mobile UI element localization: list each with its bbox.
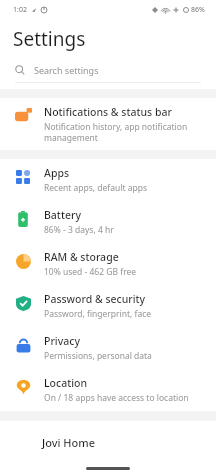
staticText: 86% [191, 5, 205, 15]
staticText: 86% - 3 days, 4 hr [44, 224, 114, 236]
button[interactable]: Battery [0, 201, 216, 243]
staticText: Location [44, 376, 88, 390]
staticText: Battery [44, 208, 81, 222]
staticText: RAM & storage [44, 250, 119, 264]
other: Location [16, 380, 31, 395]
button[interactable]: Privacy [0, 327, 216, 369]
button[interactable]: RAM and storage [0, 243, 216, 285]
staticText: 1:02 [13, 5, 27, 15]
staticText: Settings [13, 26, 86, 52]
staticText: Password, fingerprint, face [44, 308, 152, 320]
button[interactable]: Password and security [0, 285, 216, 327]
button[interactable]: Search settings [0, 62, 216, 78]
staticText: 10% used - 462 GB free [44, 266, 137, 278]
button[interactable]: Location [0, 369, 216, 411]
staticText: Privacy [44, 334, 80, 348]
other: Password and security [16, 296, 31, 311]
other: Battery [15, 211, 31, 227]
other: Notifications [15, 108, 32, 125]
button[interactable]: Apps [0, 159, 216, 201]
staticText: Apps [44, 166, 70, 180]
staticText: On / 18 apps have access to location [44, 392, 189, 404]
other: RAM and storage [16, 254, 31, 269]
staticText: Notifications & status bar [44, 105, 172, 119]
other: Privacy [16, 338, 31, 353]
staticText: Notification history, app notification m… [44, 121, 188, 143]
staticText: Password & security [44, 292, 146, 306]
staticText: Jovi Home [42, 435, 95, 450]
staticText: Search settings [34, 64, 99, 76]
other: Apps [16, 170, 30, 184]
button[interactable]: Notifications [0, 98, 216, 150]
staticText: Recent apps, default apps [44, 182, 148, 194]
staticText: Permissions, personal data [44, 350, 152, 362]
